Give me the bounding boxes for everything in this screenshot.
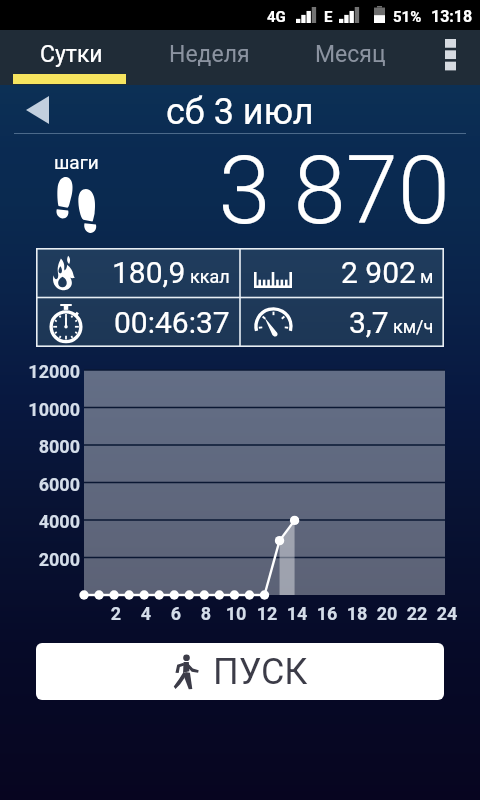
staticText: 2000 <box>0 549 80 570</box>
staticText: шаги <box>54 151 99 173</box>
button[interactable]: Previous day <box>14 87 60 133</box>
staticText: км/ч <box>393 316 434 337</box>
staticText: 2 <box>96 603 136 624</box>
staticText: 3,7 <box>349 305 389 340</box>
staticText: 24 <box>427 603 467 624</box>
staticText: 6000 <box>0 474 80 495</box>
staticText: 10 <box>216 603 256 624</box>
staticText: 4 <box>126 603 166 624</box>
staticText: 10000 <box>0 399 80 420</box>
button[interactable]: 3,7 <box>240 298 444 347</box>
staticText: 180,9 <box>112 255 186 290</box>
staticText: 20 <box>367 603 407 624</box>
staticText: 00:46:37 <box>114 305 230 340</box>
staticText: ПУСК <box>213 651 308 693</box>
staticText: 8000 <box>0 436 80 457</box>
button[interactable]: 180,9 <box>36 248 240 297</box>
button[interactable]: 2 902 <box>240 248 444 297</box>
staticText: м <box>420 266 434 287</box>
button[interactable]: Неделя <box>142 30 276 85</box>
staticText: 12000 <box>0 361 80 382</box>
staticText: Сутки <box>40 41 103 68</box>
staticText: 2 902 <box>341 255 416 290</box>
button[interactable]: ПУСК <box>36 643 444 700</box>
staticText: E <box>324 8 333 26</box>
staticText: Неделя <box>169 41 250 68</box>
button[interactable]: More options <box>422 29 478 83</box>
staticText: сб 3 июл <box>166 91 314 133</box>
staticText: 18 <box>337 603 377 624</box>
button[interactable]: 00:46:37 <box>36 298 240 347</box>
staticText: ккал <box>190 266 230 287</box>
staticText: 14 <box>277 603 317 624</box>
staticText: 6 <box>156 603 196 624</box>
staticText: 51% <box>393 8 422 26</box>
staticText: Месяц <box>315 41 386 68</box>
staticText: 8 <box>186 603 226 624</box>
button[interactable]: Месяц <box>276 30 424 85</box>
staticText: 22 <box>397 603 437 624</box>
staticText: 12 <box>247 603 287 624</box>
staticText: 4G <box>267 8 286 26</box>
button[interactable]: Сутки <box>0 30 142 85</box>
staticText: 4000 <box>0 511 80 532</box>
staticText: 13:18 <box>431 7 473 26</box>
staticText: 16 <box>307 603 347 624</box>
staticText: 3 870 <box>0 136 450 246</box>
